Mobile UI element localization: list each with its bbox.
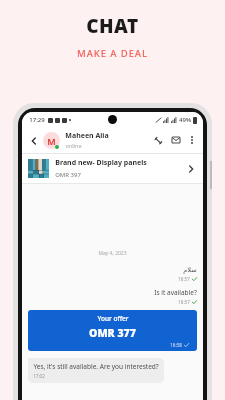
other: Open listing: [185, 163, 197, 175]
staticText: M: [47, 135, 56, 147]
staticText: Brand new- Display panels: [55, 158, 147, 168]
staticText: 49%: [179, 116, 191, 124]
staticText: سلام: [183, 266, 197, 274]
staticText: Maheen Alia: [65, 131, 109, 141]
staticText: OMR 377: [89, 326, 136, 340]
staticText: 17:02: [33, 373, 45, 379]
button[interactable]: Brand new- Display panels: [22, 154, 203, 183]
button[interactable]: Your offer: [28, 310, 197, 351]
button[interactable]: Maheen Alia: [65, 131, 151, 149]
staticText: 16:58: [170, 342, 182, 348]
button[interactable]: سلام: [28, 266, 197, 282]
button[interactable]: Back: [27, 134, 40, 147]
staticText: 16:57: [178, 276, 190, 282]
staticText: Is it available?: [154, 288, 197, 297]
button[interactable]: Call: [151, 133, 165, 147]
staticText: Yes, it's still available. Are you inter…: [33, 362, 159, 371]
staticText: Your offer: [97, 314, 129, 323]
staticText: MAKE A DEAL: [77, 47, 148, 60]
button[interactable]: Yes, it's still available. Are you inter…: [28, 358, 164, 383]
staticText: 17:29: [29, 116, 45, 124]
staticText: May 4, 2023: [98, 250, 127, 257]
button[interactable]: Messages: [169, 133, 183, 147]
button[interactable]: More options: [186, 134, 198, 146]
staticText: OMR 397: [55, 171, 81, 179]
staticText: 16:57: [178, 299, 190, 305]
staticText: CHAT: [86, 13, 139, 39]
staticText: online: [65, 142, 82, 149]
button[interactable]: Is it available?: [28, 288, 197, 305]
